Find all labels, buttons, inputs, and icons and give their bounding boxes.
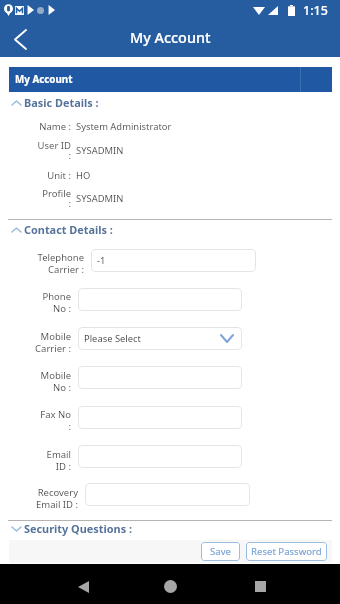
staticText: Name : [39, 120, 71, 133]
staticText: HO [76, 169, 91, 182]
staticText: Phone No : [42, 290, 71, 315]
staticText: Please Select [84, 332, 141, 345]
button[interactable]: Please Select [78, 327, 242, 350]
staticText: Mobile No : [40, 369, 71, 394]
button[interactable]: Security Questions : [0, 519, 340, 537]
staticText: SYSADMIN [76, 144, 124, 157]
button[interactable]: Basic Details : [0, 93, 340, 111]
staticText: Recovery Email ID : [35, 486, 78, 511]
staticText: -1 [97, 254, 106, 267]
staticText: Save [210, 545, 231, 558]
staticText: SYSADMIN [76, 192, 124, 205]
staticText: Email ID : [46, 448, 71, 473]
staticText: Reset Password [251, 545, 322, 558]
button[interactable]: Navigate back [5, 24, 35, 54]
button[interactable] [78, 406, 242, 429]
staticText: 1:15 [303, 2, 328, 19]
button[interactable]: -1 [91, 249, 256, 272]
button[interactable]: Reset Password [246, 542, 327, 561]
staticText: Profile : [42, 187, 71, 210]
button[interactable] [78, 288, 242, 311]
button[interactable] [85, 483, 250, 506]
staticText: My Account [130, 28, 211, 48]
staticText: Unit : [47, 169, 71, 182]
staticText: My Account [15, 73, 73, 86]
button[interactable]: Contact Details : [0, 220, 340, 238]
staticText: Mobile Carrier : [35, 330, 71, 355]
button[interactable] [78, 366, 242, 389]
button[interactable]: Back [67, 570, 100, 603]
staticText: Fax No : [40, 408, 71, 433]
button[interactable]: My Account [9, 67, 332, 92]
staticText: Contact Details : [24, 222, 113, 237]
staticText: Security Questions : [24, 521, 132, 536]
staticText: Telephone Carrier : [37, 251, 84, 276]
button[interactable] [78, 445, 242, 468]
staticText: Basic Details : [24, 95, 99, 110]
button[interactable]: Recent apps [244, 570, 277, 603]
staticText: User ID : [37, 139, 71, 162]
button[interactable]: Home [154, 570, 187, 603]
staticText: System Administrator [76, 120, 172, 133]
button[interactable]: Save [201, 542, 240, 561]
